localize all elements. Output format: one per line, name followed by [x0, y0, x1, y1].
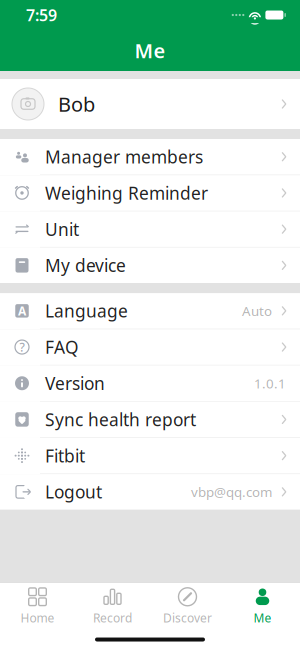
button[interactable]: Me — [225, 584, 300, 628]
staticText: Sync health report — [45, 408, 196, 431]
button[interactable]: Unit — [0, 211, 300, 248]
staticText: Language — [45, 299, 128, 322]
staticText: 1.0.1 — [254, 374, 286, 392]
button[interactable]: My device — [0, 248, 300, 283]
button[interactable]: ? — [0, 329, 300, 365]
button[interactable]: Sync health report — [0, 402, 300, 438]
button[interactable]: Version — [0, 365, 300, 402]
staticText: Record — [93, 610, 132, 626]
staticText: Auto — [242, 302, 272, 320]
staticText: FAQ — [45, 335, 79, 358]
button[interactable]: Record — [75, 584, 150, 628]
staticText: Weighing Reminder — [45, 181, 208, 204]
button[interactable]: A — [0, 293, 300, 329]
staticText: Me — [134, 37, 165, 64]
button[interactable]: Home — [0, 584, 75, 628]
staticText: vbp@qq.com — [191, 483, 272, 501]
button[interactable]: Bob — [0, 79, 300, 129]
staticText: My device — [45, 254, 126, 277]
button[interactable]: Weighing Reminder — [0, 175, 300, 211]
button[interactable]: Logout — [0, 474, 300, 510]
button[interactable]: Discover — [150, 584, 225, 628]
staticText: Me — [253, 610, 271, 626]
staticText: Manager members — [45, 145, 203, 168]
staticText: Discover — [163, 610, 212, 626]
staticText: Unit — [45, 218, 79, 241]
staticText: ? — [19, 339, 24, 355]
staticText: Version — [45, 372, 105, 395]
staticText: A — [18, 303, 26, 319]
staticText: Home — [20, 610, 54, 626]
staticText: Fitbit — [45, 444, 85, 467]
button[interactable]: Fitbit — [0, 438, 300, 474]
staticText: 7:59 — [26, 4, 57, 26]
staticText: Bob — [58, 91, 95, 117]
staticText: Logout — [45, 480, 102, 503]
button[interactable]: Manager members — [0, 139, 300, 175]
